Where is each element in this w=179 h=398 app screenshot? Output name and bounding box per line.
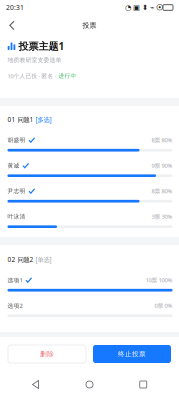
- staticText: 9票 90%: [151, 162, 172, 169]
- staticText: 选项1: [7, 276, 22, 284]
- staticText: 投票: [82, 21, 96, 30]
- button[interactable]: 选项1: [7, 275, 172, 300]
- staticText: 尹志明: [7, 187, 25, 195]
- staticText: 胡盛明: [7, 136, 25, 144]
- button[interactable]: 返回: [18, 375, 54, 393]
- staticText: ◔ ▣ ⬍ ⌁ ⦿: [125, 3, 163, 12]
- staticText: 10个人已投 · 匿名 ·: [7, 72, 56, 80]
- staticText: 黄诚: [7, 162, 19, 169]
- staticText: 投票主题1: [18, 39, 64, 53]
- staticText: 8票 80%: [151, 136, 172, 144]
- staticText: 3票 30%: [151, 213, 172, 220]
- staticText: 8票 80%: [151, 187, 172, 195]
- button[interactable]: 最近任务: [125, 375, 161, 393]
- button[interactable]: 选项2: [7, 300, 172, 326]
- staticText: 进行中: [58, 72, 76, 80]
- button[interactable]: 黄诚: [7, 160, 172, 186]
- button[interactable]: 返回: [0, 15, 24, 36]
- button[interactable]: 主页: [71, 375, 107, 393]
- button[interactable]: 删除: [8, 345, 86, 363]
- button[interactable]: 胡盛明: [7, 135, 172, 160]
- staticText: 删除: [40, 350, 54, 358]
- staticText: 选项2: [7, 302, 22, 309]
- staticText: 终止投票: [118, 350, 146, 358]
- button[interactable]: 叶泳清: [7, 211, 172, 237]
- staticText: 0票 0%: [154, 302, 172, 309]
- staticText: 01 问题1: [7, 115, 33, 124]
- staticText: 地质教研室支委选单: [7, 56, 61, 64]
- staticText: 02 问题2: [7, 255, 33, 264]
- staticText: [单选]: [35, 255, 51, 264]
- staticText: [多选]: [35, 115, 51, 124]
- staticText: 20:31: [6, 3, 24, 12]
- staticText: 叶泳清: [7, 213, 25, 220]
- button[interactable]: 尹志明: [7, 186, 172, 211]
- button[interactable]: 终止投票: [93, 345, 171, 363]
- staticText: 10票 100%: [145, 276, 172, 284]
